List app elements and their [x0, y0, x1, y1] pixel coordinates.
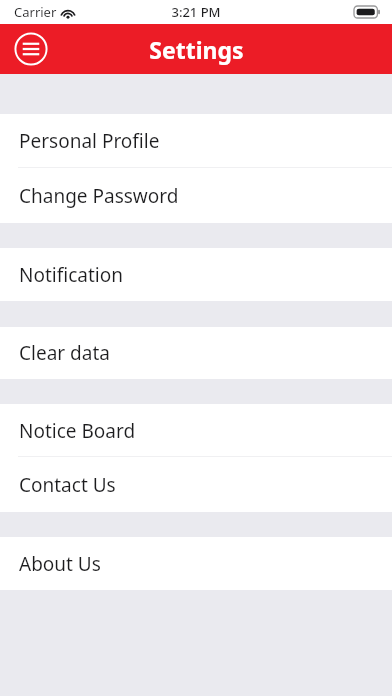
staticText: Change Password	[19, 183, 179, 209]
staticText: 3:21 PM	[171, 3, 221, 21]
button[interactable]: Open navigation menu	[12, 30, 50, 68]
staticText: Notification	[19, 262, 123, 288]
button[interactable]: Clear data	[0, 327, 392, 379]
button[interactable]: Change Password	[0, 168, 392, 223]
staticText: Carrier	[14, 3, 57, 21]
staticText: About Us	[19, 551, 101, 577]
staticText: Personal Profile	[19, 128, 160, 154]
staticText: Notice Board	[19, 418, 136, 444]
button[interactable]: Contact Us	[0, 457, 392, 512]
staticText: Contact Us	[19, 472, 116, 498]
button[interactable]: Notification	[0, 248, 392, 301]
button[interactable]: Notice Board	[0, 404, 392, 457]
button[interactable]: About Us	[0, 537, 392, 590]
staticText: Settings	[149, 34, 244, 65]
button[interactable]: Personal Profile	[0, 114, 392, 168]
staticText: Clear data	[19, 340, 110, 366]
